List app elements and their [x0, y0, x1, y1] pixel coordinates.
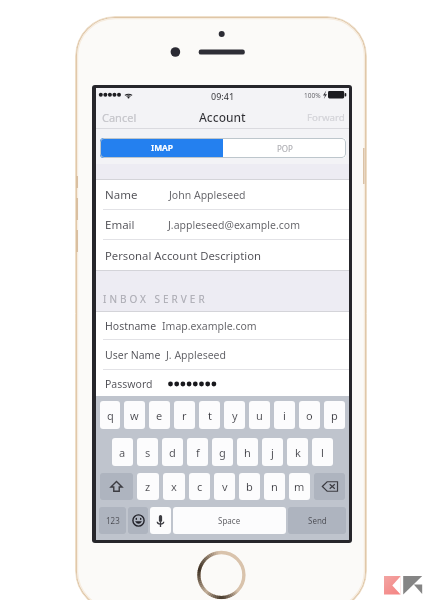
staticText: Space: [218, 515, 241, 526]
button[interactable]: e: [149, 401, 170, 429]
button[interactable]: Hostname: [96, 312, 349, 339]
button[interactable]: Forward: [299, 105, 349, 129]
staticText: i: [283, 408, 286, 423]
button[interactable]: l: [312, 438, 333, 466]
button[interactable]: b: [239, 473, 260, 500]
button[interactable]: d: [162, 438, 183, 466]
button[interactable]: j: [262, 438, 283, 466]
staticText: o: [306, 408, 313, 423]
staticText: q: [107, 408, 114, 423]
staticText: a: [119, 445, 126, 460]
button[interactable]: Cancel: [96, 105, 145, 129]
staticText: u: [256, 408, 263, 423]
button[interactable]: 123: [99, 507, 126, 534]
button[interactable]: User Name: [96, 340, 349, 369]
button[interactable]: i: [274, 401, 295, 429]
button[interactable]: w: [124, 401, 145, 429]
button[interactable]: Personal Account Description: [96, 240, 349, 270]
button[interactable]: POP: [223, 138, 346, 158]
button[interactable]: z: [137, 473, 159, 500]
button[interactable]: Backspace: [314, 473, 345, 500]
button[interactable]: h: [237, 438, 258, 466]
button[interactable]: r: [174, 401, 195, 429]
staticText: e: [156, 408, 163, 423]
staticText: J.appleseed@example.com: [168, 218, 300, 232]
button[interactable]: Emoji: [128, 507, 148, 534]
staticText: Password: [105, 377, 153, 391]
staticText: j: [271, 445, 274, 460]
staticText: 09:41: [211, 90, 235, 102]
staticText: Imap.example.com: [162, 319, 257, 333]
staticText: t: [208, 408, 212, 423]
staticText: User Name: [105, 348, 161, 362]
button[interactable]: n: [264, 473, 285, 500]
staticText: p: [331, 408, 338, 423]
staticText: Hostname: [105, 319, 157, 333]
button[interactable]: o: [299, 401, 320, 429]
staticText: h: [244, 445, 251, 460]
staticText: Send: [308, 515, 327, 526]
staticText: Name: [105, 187, 138, 203]
staticText: INBOX SERVER: [103, 292, 208, 306]
button[interactable]: g: [212, 438, 233, 466]
staticText: Account: [199, 109, 246, 125]
staticText: s: [145, 445, 151, 460]
staticText: y: [232, 408, 238, 423]
staticText: g: [219, 445, 226, 460]
staticText: 123: [106, 515, 120, 526]
button[interactable]: t: [199, 401, 220, 429]
button[interactable]: u: [249, 401, 270, 429]
button[interactable]: c: [189, 473, 210, 500]
staticText: Email: [105, 217, 135, 233]
staticText: John Appleseed: [169, 188, 246, 202]
staticText: 100%: [304, 91, 321, 100]
staticText: w: [130, 408, 139, 423]
staticText: x: [171, 479, 177, 494]
staticText: r: [182, 408, 187, 423]
button[interactable]: Space: [173, 507, 286, 534]
staticText: v: [222, 479, 228, 494]
button[interactable]: m: [289, 473, 310, 500]
button[interactable]: y: [224, 401, 245, 429]
staticText: Personal Account Description: [105, 248, 261, 263]
button[interactable]: Send: [288, 507, 346, 534]
staticText: J. Appleseed: [166, 348, 226, 362]
button[interactable]: k: [287, 438, 308, 466]
button[interactable]: Shift: [100, 473, 133, 500]
button[interactable]: p: [324, 401, 345, 429]
button[interactable]: v: [214, 473, 235, 500]
staticText: z: [145, 479, 151, 494]
staticText: Forward: [307, 111, 345, 124]
staticText: d: [169, 445, 176, 460]
button[interactable]: Password: [96, 370, 349, 397]
button[interactable]: IMAP: [100, 138, 223, 158]
button[interactable]: f: [187, 438, 208, 466]
button[interactable]: Dictation: [150, 507, 171, 534]
staticText: b: [246, 479, 253, 494]
staticText: f: [196, 445, 200, 460]
button[interactable]: x: [163, 473, 185, 500]
button[interactable]: Email: [96, 210, 349, 239]
staticText: IMAP: [151, 142, 173, 154]
staticText: c: [197, 479, 203, 494]
button[interactable]: Name: [96, 180, 349, 209]
button[interactable]: a: [112, 438, 133, 466]
staticText: Cancel: [102, 110, 137, 125]
button[interactable]: s: [137, 438, 158, 466]
staticText: POP: [277, 143, 293, 154]
staticText: k: [295, 445, 301, 460]
staticText: l: [321, 445, 324, 460]
staticText: m: [294, 479, 305, 494]
button[interactable]: q: [100, 401, 120, 429]
staticText: n: [271, 479, 278, 494]
